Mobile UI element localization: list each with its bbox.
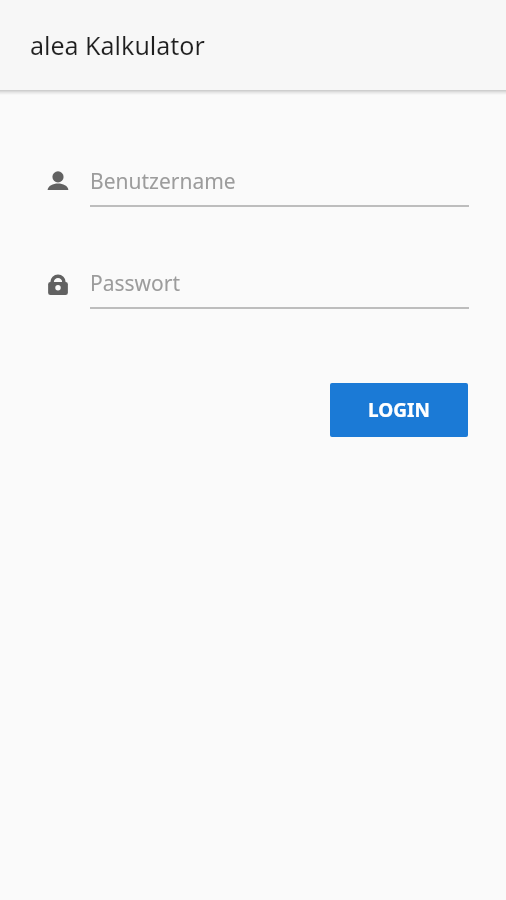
staticText: Benutzername — [90, 167, 236, 196]
staticText: alea Kalkulator — [30, 28, 205, 62]
staticText: Passwort — [90, 269, 181, 298]
button[interactable]: Password — [44, 269, 469, 309]
other: Username — [44, 170, 72, 195]
other: Password — [44, 272, 72, 297]
button[interactable]: LOGIN — [330, 383, 468, 437]
button[interactable]: Username — [44, 167, 469, 207]
staticText: LOGIN — [368, 397, 430, 423]
